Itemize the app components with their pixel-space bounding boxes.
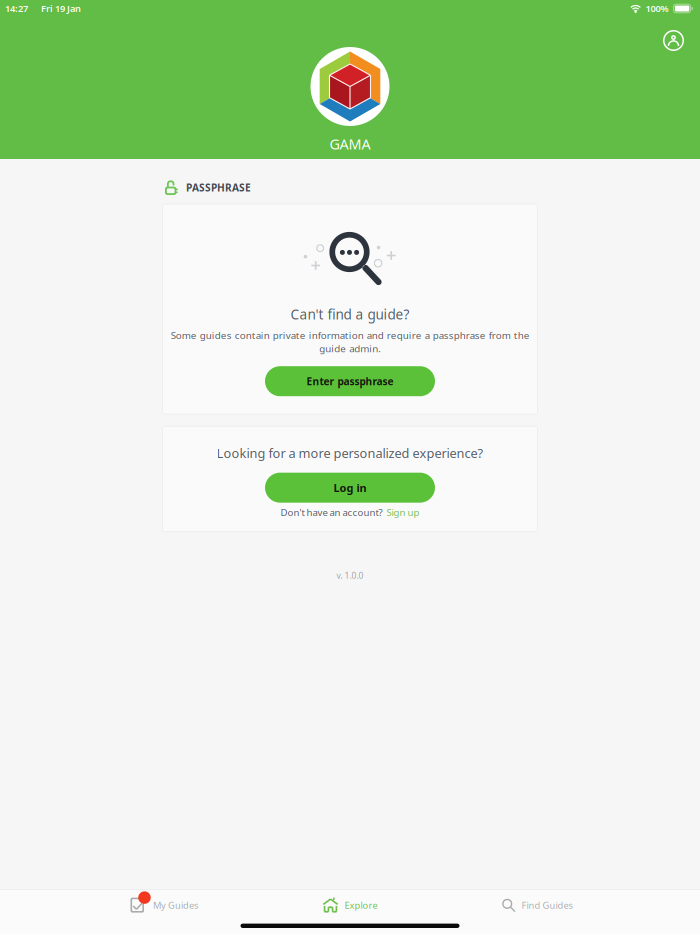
staticText: 100% xyxy=(646,2,669,15)
button[interactable]: Find Guides xyxy=(443,890,630,921)
staticText: Some guides contain private information … xyxy=(170,328,529,355)
staticText: Enter passphrase xyxy=(306,374,393,388)
staticText: My Guides xyxy=(153,899,198,911)
staticText: Find Guides xyxy=(521,899,572,911)
staticText: Explore xyxy=(344,899,377,911)
staticText: Don't have an account? xyxy=(280,506,382,519)
staticText: Log in xyxy=(333,480,366,495)
staticText: Can't find a guide? xyxy=(290,305,409,323)
staticText: Sign up xyxy=(386,506,419,519)
button[interactable]: Log in xyxy=(265,473,435,503)
button[interactable]: Account xyxy=(655,22,692,59)
button[interactable]: Explore xyxy=(256,890,443,921)
staticText: PASSPHRASE xyxy=(186,181,251,194)
button[interactable]: My Guides xyxy=(69,890,256,921)
staticText: 14:27 xyxy=(5,2,28,15)
staticText: Looking for a more personalized experien… xyxy=(216,444,483,462)
button[interactable]: Sign up xyxy=(382,506,419,519)
button[interactable]: Enter passphrase xyxy=(265,366,435,396)
staticText: GAMA xyxy=(329,134,370,154)
staticText: v. 1.0.0 xyxy=(336,570,363,581)
staticText: Fri 19 Jan xyxy=(41,2,81,15)
